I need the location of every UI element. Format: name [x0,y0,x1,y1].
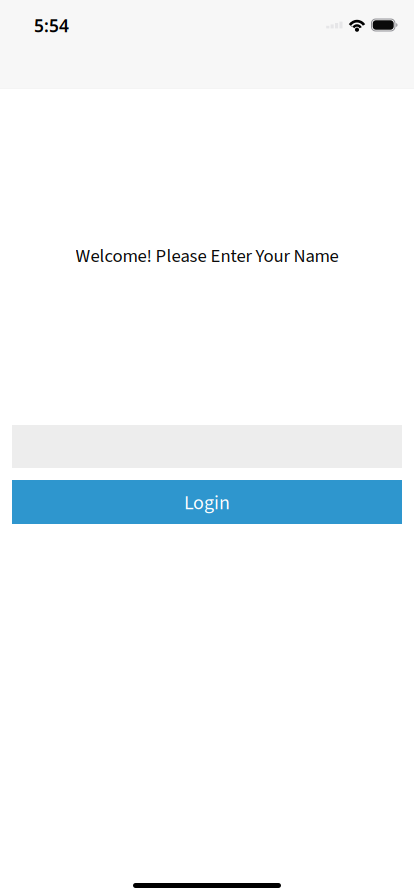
staticText: 5:54 [34,14,69,37]
button[interactable]: Login [12,480,402,524]
staticText: Login [184,489,230,517]
staticText: Welcome! Please Enter Your Name [75,243,338,270]
